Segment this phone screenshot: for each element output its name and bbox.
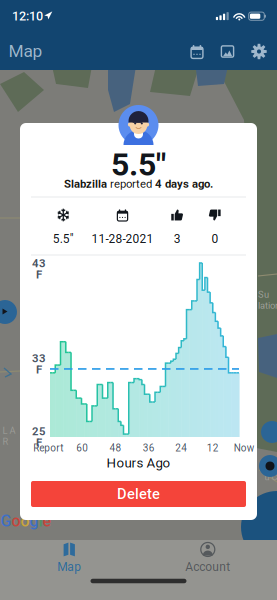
staticText: F [36,436,42,449]
staticText: Map [57,560,81,574]
staticText: Report [33,442,63,454]
staticText: 36 [143,442,155,454]
staticText: 5.5" [53,232,74,246]
button[interactable]: Delete [31,481,246,507]
staticText: 5.5" [111,146,166,183]
staticText: F [36,363,42,376]
staticText: 48 [110,442,122,454]
staticText: g [29,512,38,530]
button[interactable]: Calendar [182,34,212,68]
staticText: 3 [174,232,181,246]
staticText: o [20,512,29,530]
staticText: 11-28-2021 [91,232,153,246]
staticText: Slabzilla reported 4 days ago. [64,177,213,190]
staticText: G [0,512,11,530]
staticText: o [11,512,20,530]
staticText: u C [264,471,277,482]
staticText: 33 [32,352,46,365]
staticText: Now [234,442,255,454]
staticText: Su lation [258,289,277,311]
staticText: e [42,512,51,530]
staticText: 12:10 [12,9,43,24]
staticText: 43 [32,257,46,270]
button[interactable]: Settings [244,34,274,68]
staticText: L A R [2,425,15,447]
staticText: 12 [207,442,219,454]
staticText: l [38,512,42,530]
staticText: 0 [212,232,219,246]
staticText: 60 [76,442,88,454]
staticText: Map [8,41,42,61]
button[interactable]: Account [139,538,277,578]
staticText: Account [185,560,230,574]
staticText: Hours Ago [106,455,170,471]
staticText: Delete [117,485,160,503]
staticText: F [36,268,42,281]
button[interactable]: Map [0,538,138,578]
button[interactable]: Photos [212,34,242,68]
staticText: 25 [32,425,46,438]
staticText: 24 [175,442,187,454]
